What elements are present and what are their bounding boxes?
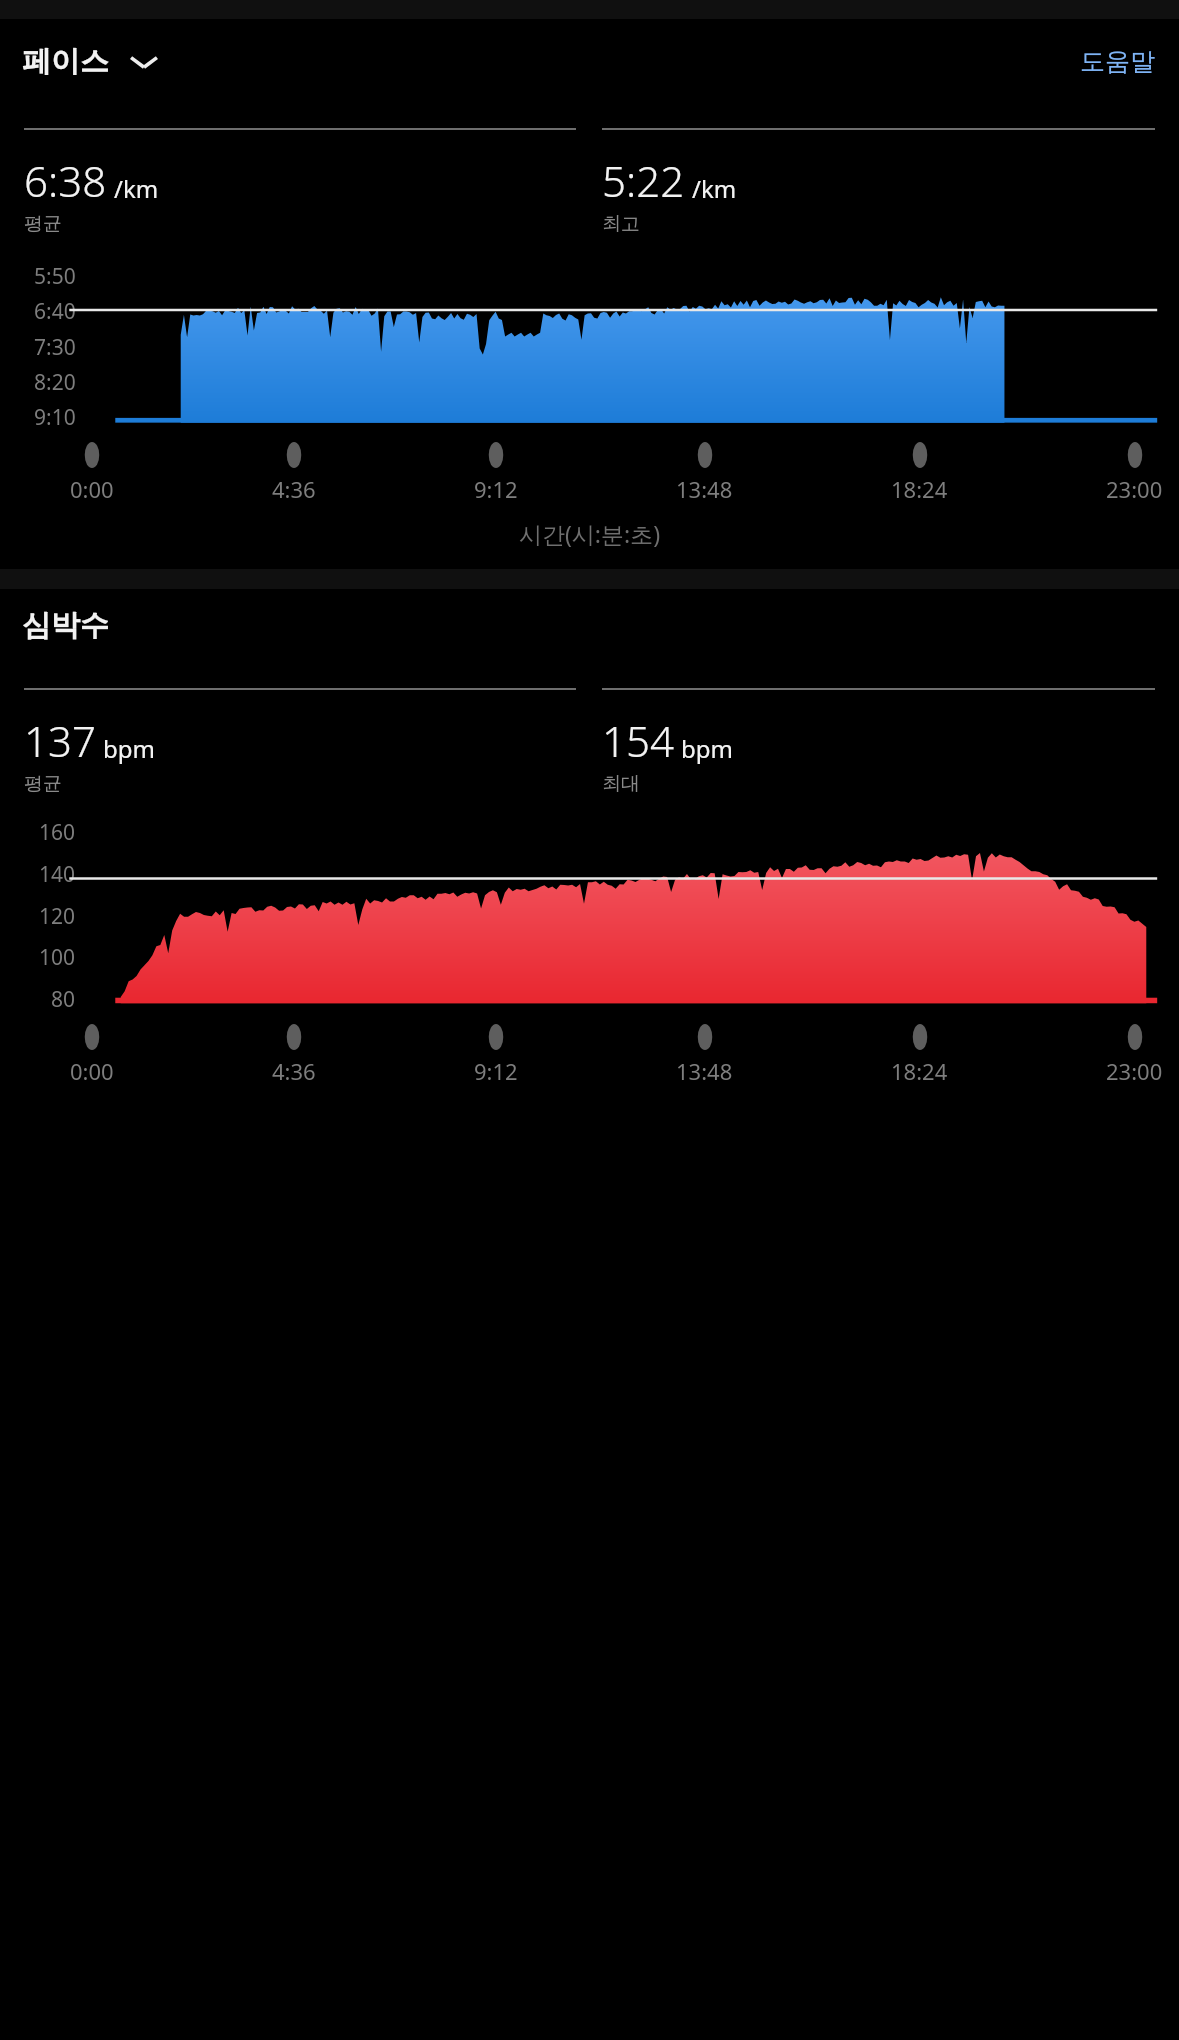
staticText: 6:40 (34, 297, 76, 326)
staticText: 7:30 (34, 333, 76, 362)
staticText: 18:24 (891, 1056, 948, 1086)
staticText: 5:22 (602, 152, 685, 209)
staticText: 도움말 (1080, 46, 1155, 77)
staticText: 9:12 (474, 474, 518, 504)
staticText: bpm (103, 732, 155, 765)
staticText: 8:20 (34, 368, 76, 397)
staticText: 6:38 (24, 152, 107, 209)
staticText: 23:00 (1106, 1056, 1163, 1086)
button[interactable]: 페이스 지표 선택 (18, 35, 165, 88)
staticText: 0:00 (70, 474, 114, 504)
staticText: 0:00 (70, 1056, 114, 1086)
staticText: 23:00 (1106, 474, 1163, 504)
staticText: bpm (681, 732, 733, 765)
staticText: 최고 (602, 212, 640, 236)
staticText: 140 (39, 860, 76, 889)
staticText: 페이스 (22, 43, 109, 80)
staticText: 137 (24, 712, 96, 769)
staticText: 80 (51, 985, 76, 1014)
staticText: 평균 (24, 772, 62, 796)
button[interactable]: 도움말 (1074, 38, 1161, 85)
staticText: 평균 (24, 212, 62, 236)
staticText: 160 (39, 818, 76, 847)
staticText: 100 (39, 943, 76, 972)
staticText: /km (692, 172, 737, 205)
staticText: 120 (39, 902, 76, 931)
staticText: 4:36 (272, 1056, 316, 1086)
staticText: 154 (602, 712, 674, 769)
staticText: 9:12 (474, 1056, 518, 1086)
staticText: 9:10 (34, 403, 76, 432)
staticText: 18:24 (891, 474, 948, 504)
staticText: 최대 (602, 772, 640, 796)
staticText: 13:48 (676, 1056, 733, 1086)
staticText: 5:50 (34, 262, 76, 291)
staticText: 4:36 (272, 474, 316, 504)
staticText: 심박수 (22, 607, 109, 644)
staticText: 13:48 (676, 474, 733, 504)
staticText: 시간(시:분:초) (0, 518, 1179, 549)
staticText: /km (114, 172, 159, 205)
